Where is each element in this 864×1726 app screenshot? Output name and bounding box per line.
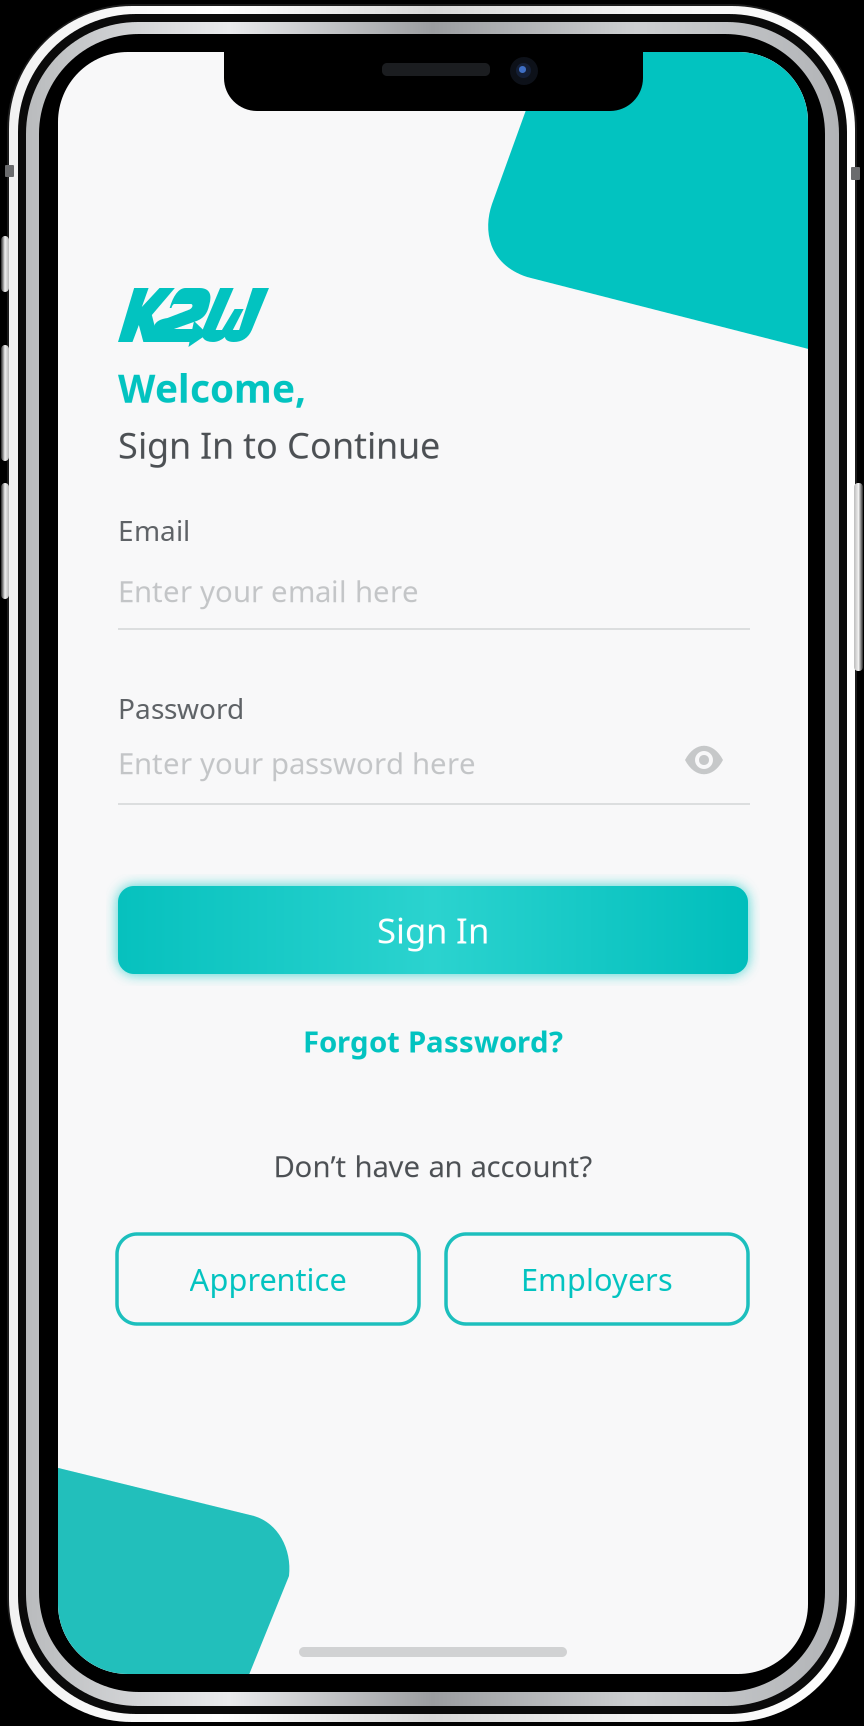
button[interactable]: Show password	[685, 747, 723, 773]
button[interactable]: Apprentice	[117, 1234, 419, 1324]
button[interactable]: Sign In	[118, 886, 748, 974]
button[interactable]: Forgot Password?	[118, 1014, 748, 1068]
staticText: Sign In to Continue	[118, 421, 440, 469]
staticText: Enter your password here	[118, 743, 476, 782]
staticText: Welcome,	[118, 362, 306, 413]
staticText: Sign In	[377, 907, 489, 953]
staticText: Password	[118, 690, 244, 727]
button[interactable]: Employers	[446, 1234, 748, 1324]
staticText: Forgot Password?	[303, 1021, 563, 1060]
staticText: Enter your email here	[118, 571, 419, 610]
staticText: Employers	[521, 1259, 673, 1299]
staticText: Apprentice	[189, 1259, 346, 1299]
staticText: Don’t have an account?	[273, 1146, 592, 1185]
staticText: Email	[118, 512, 190, 549]
